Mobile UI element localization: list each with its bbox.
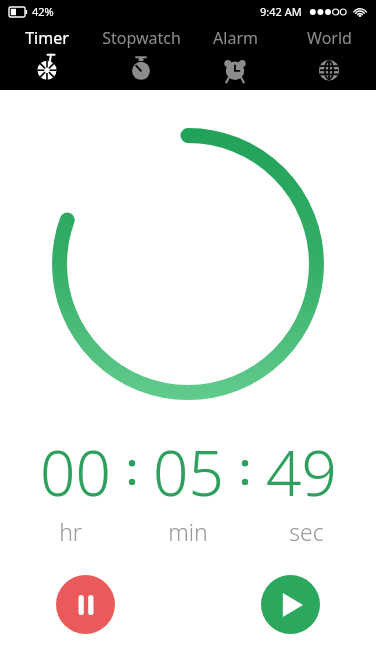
- staticText: 9:42 AM: [260, 4, 302, 19]
- staticText: min: [168, 516, 208, 547]
- staticText: Alarm: [213, 27, 258, 49]
- button[interactable]: Pause: [56, 575, 115, 634]
- staticText: 00: [40, 430, 111, 514]
- staticText: 05: [153, 430, 224, 514]
- button[interactable]: Stopwatch: [94, 22, 188, 90]
- staticText: World: [307, 27, 352, 49]
- button[interactable]: Timer: [0, 22, 94, 90]
- staticText: 49: [266, 430, 337, 514]
- button[interactable]: World: [282, 22, 376, 90]
- staticText: Stopwatch: [102, 27, 181, 49]
- button[interactable]: Start: [261, 575, 320, 634]
- staticText: sec: [289, 516, 324, 547]
- staticText: hr: [59, 516, 82, 547]
- staticText: Timer: [25, 27, 69, 49]
- button[interactable]: Alarm: [188, 22, 282, 90]
- staticText: 42%: [32, 4, 54, 19]
